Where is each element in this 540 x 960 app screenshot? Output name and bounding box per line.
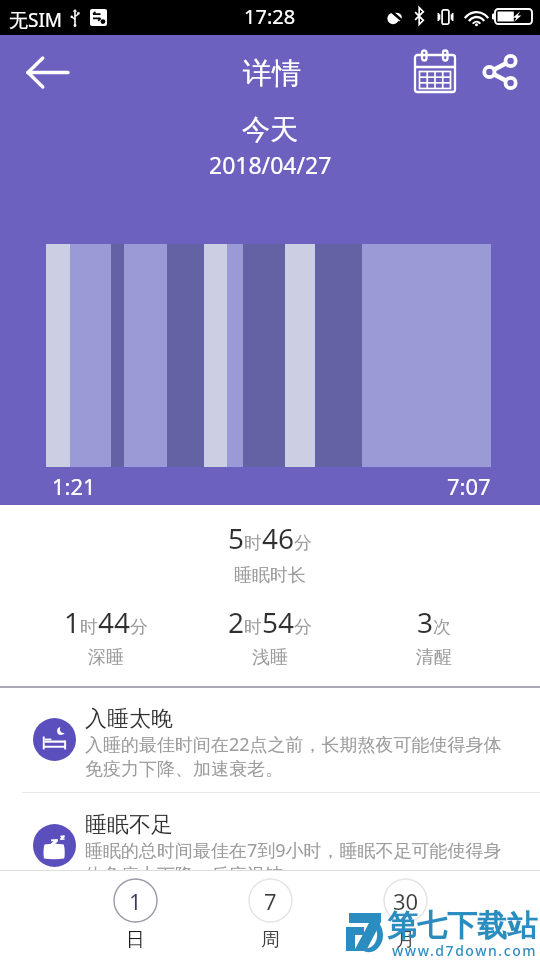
staticText: 深睡 [88,646,124,669]
button[interactable]: 睡眠不足 [0,808,540,908]
staticText: 3次 [417,603,452,641]
staticText: 清醒 [416,646,452,669]
staticText: 免疫力下降、加速衰老。 [85,758,283,781]
staticText: 30 [393,886,419,916]
staticText: 17:28 [244,3,296,30]
staticText: 日 [126,928,145,952]
button[interactable]: 1 [68,870,203,960]
button[interactable]: 30 [338,870,473,960]
staticText: www.d7down.com [392,941,538,960]
staticText: 7 [264,886,277,916]
button[interactable]: Share [468,40,532,104]
button[interactable]: 7 [203,870,338,960]
staticText: 1 [129,886,142,916]
staticText: 睡眠时长 [234,564,306,587]
staticText: 1:21 [52,471,96,501]
staticText: 月 [396,928,415,952]
staticText: 1时44分 [64,603,149,641]
button[interactable]: Calendar [403,40,467,104]
staticText: 2018/04/27 [209,149,332,180]
staticText: 5时46分 [228,519,313,557]
staticText: 2时54分 [228,603,313,641]
button[interactable]: 入睡太晚 [0,702,540,802]
staticText: 体免疫力下降、反应迟钝。 [85,864,301,887]
staticText: 入睡的最佳时间在22点之前，长期熬夜可能使得身体 [85,732,502,757]
staticText: 浅睡 [252,646,288,669]
staticText: 睡眠的总时间最佳在7到9小时，睡眠不足可能使得身 [85,838,502,863]
staticText: 详情 [243,55,301,92]
staticText: 第七下载站 [387,907,537,945]
button[interactable]: Back [13,40,81,104]
staticText: 睡眠不足 [85,811,173,839]
staticText: 今天 [242,112,298,147]
staticText: 7:07 [447,471,491,501]
staticText: 周 [261,928,280,952]
staticText: 入睡太晚 [85,705,173,733]
staticText: 无SIM [9,7,63,33]
